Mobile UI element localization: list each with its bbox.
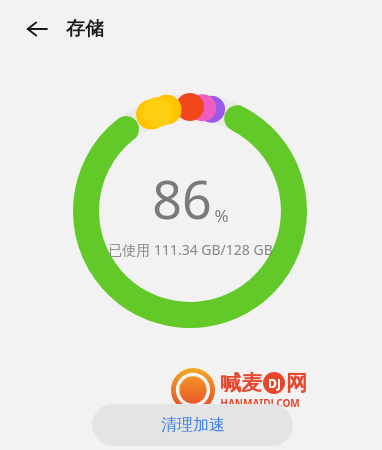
- staticText: 喊麦: [220, 370, 262, 396]
- button[interactable]: 清理加速: [92, 404, 293, 446]
- staticText: DJ: [268, 375, 281, 391]
- staticText: 已使用 111.34 GB/128 GB: [108, 240, 273, 259]
- staticText: 86: [152, 163, 212, 234]
- staticText: 清理加速: [161, 415, 225, 435]
- button[interactable]: Back: [22, 14, 52, 44]
- staticText: %: [214, 204, 229, 227]
- staticText: HANMAIDJ.COM: [220, 396, 300, 410]
- staticText: 存储: [66, 17, 104, 41]
- staticText: 网: [286, 370, 307, 396]
